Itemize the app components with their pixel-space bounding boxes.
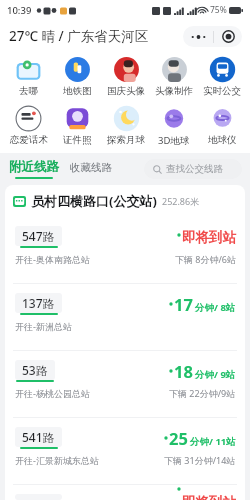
staticText: 547路 <box>22 228 55 244</box>
staticText: 开往-杨桃公园总站 <box>15 387 90 399</box>
staticText: 开往-新洲总站 <box>15 320 72 332</box>
staticText: 即将到站 <box>182 229 236 246</box>
staticText: 收藏线路 <box>70 161 112 174</box>
staticText: 下辆 31分钟/14站 <box>164 454 236 466</box>
button[interactable]: 更多 <box>183 26 213 47</box>
staticText: 地铁图 <box>63 85 92 97</box>
staticText: 国庆头像 <box>107 85 145 97</box>
staticText: 10:39 <box>7 4 32 17</box>
button[interactable]: 239路 <box>5 485 245 500</box>
staticText: 查找公交线路 <box>166 163 223 175</box>
button[interactable]: 地铁图 <box>53 54 102 99</box>
staticText: 252.86米 <box>162 195 200 207</box>
staticText: 地球仪 <box>208 134 237 146</box>
staticText: 分钟/ 9站 <box>195 368 236 381</box>
staticText: 去哪 <box>19 85 38 97</box>
staticText: 实时公交 <box>203 85 241 97</box>
staticText: 下辆 8分钟/6站 <box>175 253 236 265</box>
button[interactable]: 定位 <box>214 26 242 47</box>
button[interactable]: 53路 <box>5 351 245 417</box>
staticText: 75% <box>210 4 227 16</box>
staticText: 27℃ 晴 / 广东省天河区 <box>9 27 149 45</box>
button[interactable]: 去哪 <box>4 54 53 99</box>
button[interactable]: 收藏线路 <box>70 161 112 177</box>
button[interactable]: 547路 <box>5 217 245 283</box>
staticText: 137路 <box>22 295 55 311</box>
button[interactable]: 员村四横路口(公交站) <box>13 185 245 217</box>
staticText: 541路 <box>22 429 55 445</box>
staticText: 18 <box>174 360 193 382</box>
staticText: 开往-奥体南路总站 <box>15 253 90 265</box>
button[interactable]: 541路 <box>5 418 245 484</box>
button[interactable]: 实时公交 <box>198 54 246 99</box>
button[interactable]: 137路 <box>5 284 245 350</box>
staticText: 开往-汇景新城东总站 <box>15 454 99 466</box>
staticText: 证件照 <box>63 134 92 146</box>
staticText: 3D地球 <box>158 134 190 147</box>
staticText: 头像制作 <box>155 85 193 97</box>
button[interactable]: 地球仪 <box>198 103 246 148</box>
button[interactable]: 附近线路 <box>9 159 59 179</box>
staticText: 分钟/ 11站 <box>190 435 236 448</box>
button[interactable]: 国庆头像 <box>102 54 150 99</box>
staticText: 53路 <box>22 362 48 378</box>
staticText: 17 <box>174 293 193 315</box>
staticText: 25 <box>169 427 188 449</box>
button[interactable]: 恋爱话术 <box>4 103 53 148</box>
staticText: 下辆 22分钟/9站 <box>169 387 236 399</box>
button[interactable]: 头像制作 <box>150 54 198 99</box>
staticText: 附近线路 <box>9 159 59 175</box>
button[interactable]: 探索月球 <box>102 103 150 148</box>
button[interactable]: 查找公交线路 <box>144 159 242 179</box>
staticText: 分钟/ 8站 <box>195 301 236 314</box>
button[interactable]: 证件照 <box>53 103 102 148</box>
staticText: 员村四横路口(公交站) <box>31 192 157 210</box>
staticText: 即将到站 <box>182 494 236 500</box>
button[interactable]: 3D地球 <box>150 103 198 149</box>
staticText: 恋爱话术 <box>10 134 48 146</box>
staticText: 探索月球 <box>107 134 145 146</box>
